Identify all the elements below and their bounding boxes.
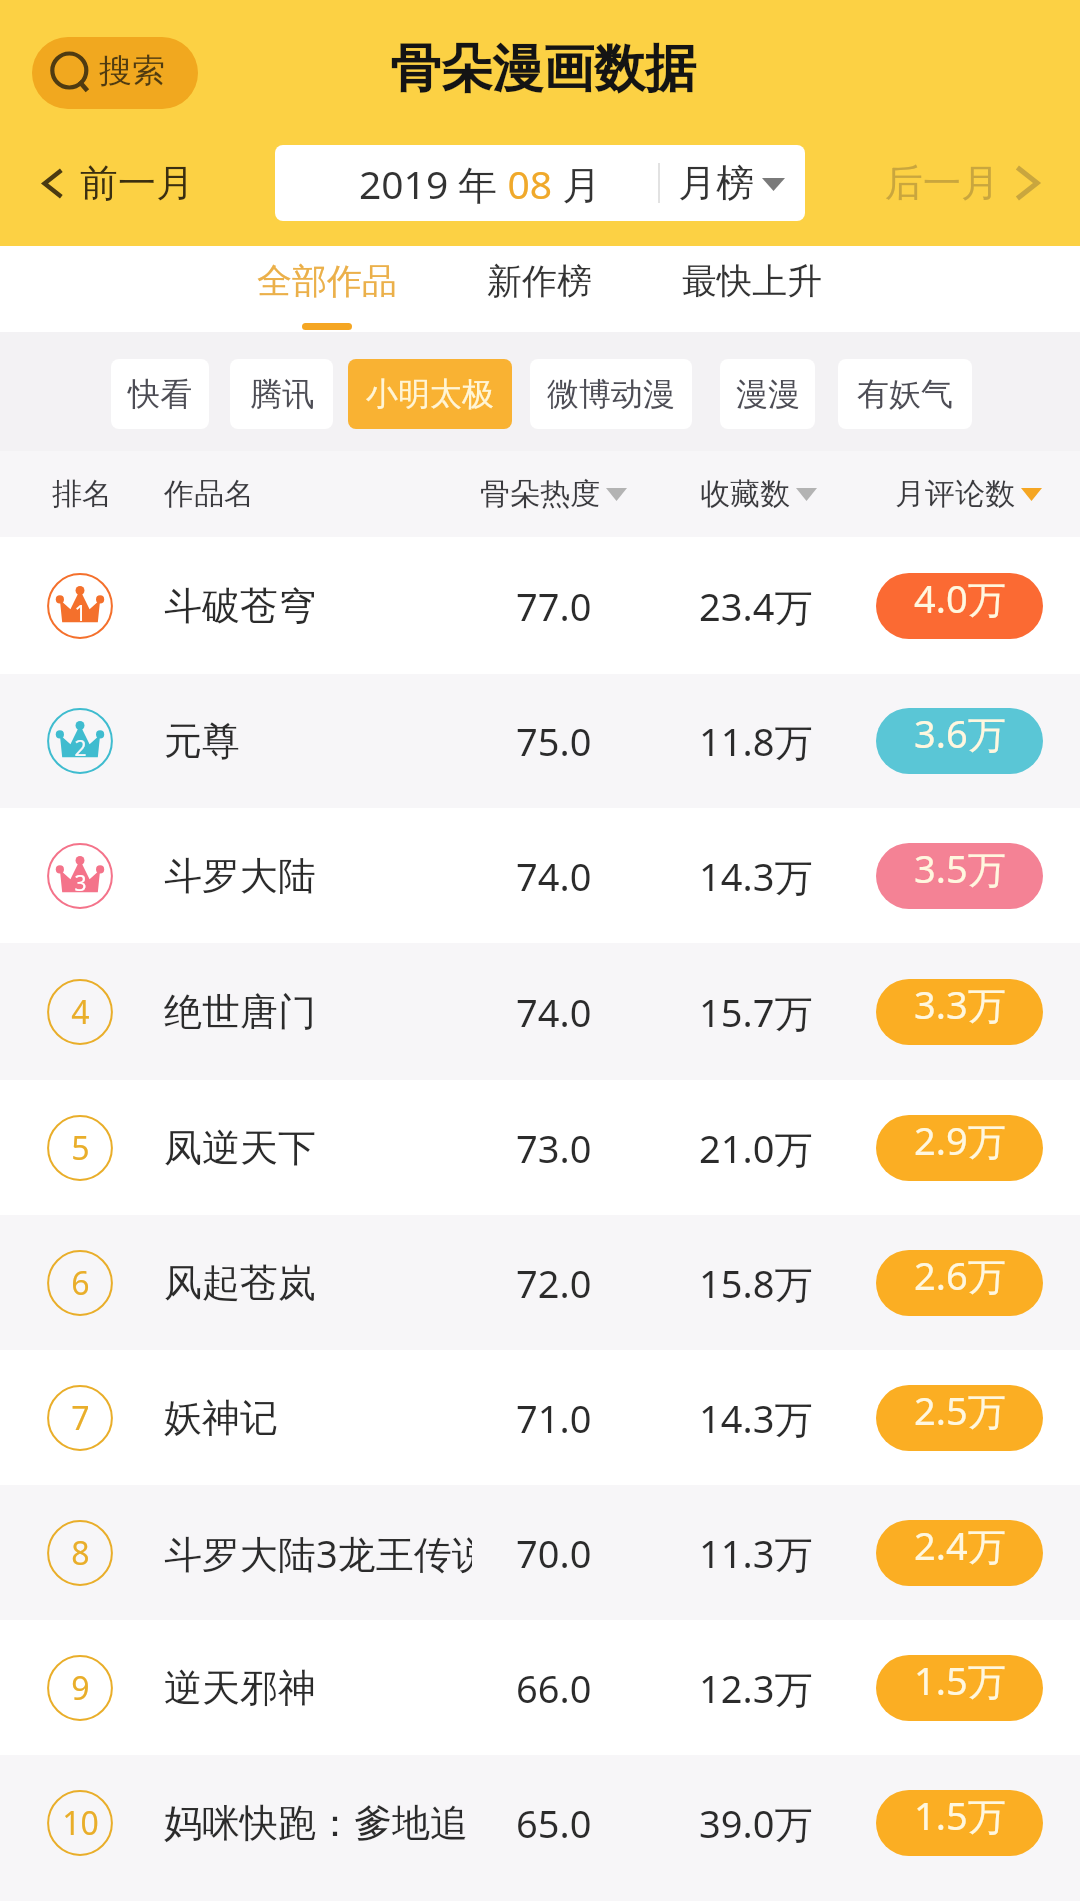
staticText: 3.5万 bbox=[914, 843, 1006, 894]
staticText: 腾讯 bbox=[250, 374, 314, 414]
staticText: 2.4万 bbox=[914, 1520, 1006, 1571]
button[interactable]: 后一月 bbox=[870, 145, 1050, 221]
button[interactable]: 1 bbox=[0, 537, 1080, 674]
staticText: 搜索 bbox=[99, 50, 165, 92]
staticText: 漫漫 bbox=[736, 374, 800, 414]
button[interactable]: 有妖气 bbox=[838, 359, 972, 429]
button[interactable]: 5 bbox=[0, 1080, 1080, 1215]
staticText: 1.5万 bbox=[914, 1655, 1006, 1706]
staticText: 月榜 bbox=[678, 159, 754, 207]
staticText: 骨朵热度 bbox=[480, 475, 600, 513]
button[interactable]: 8 bbox=[0, 1485, 1080, 1620]
button[interactable]: 腾讯 bbox=[230, 359, 333, 429]
button[interactable]: 6 bbox=[0, 1215, 1080, 1350]
staticText: 2.5万 bbox=[914, 1385, 1006, 1436]
staticText: 15.8万 bbox=[699, 1257, 813, 1309]
staticText: 77.0 bbox=[516, 580, 592, 632]
staticText: 1 bbox=[74, 599, 87, 628]
button[interactable]: 微博动漫 bbox=[530, 359, 692, 429]
staticText: 2.6万 bbox=[914, 1250, 1006, 1301]
button[interactable]: 月评论数 bbox=[895, 475, 1042, 513]
staticText: 2 bbox=[74, 734, 87, 763]
staticText: 骨朵漫画数据 bbox=[390, 37, 696, 101]
staticText: 4.0万 bbox=[914, 573, 1006, 624]
staticText: 后一月 bbox=[885, 159, 999, 207]
staticText: 11.3万 bbox=[699, 1527, 813, 1579]
button[interactable]: 2019 年 08 月 月榜 bbox=[275, 145, 805, 221]
staticText: 74.0 bbox=[516, 986, 592, 1038]
button[interactable]: 全部作品 bbox=[237, 246, 417, 330]
staticText: 21.0万 bbox=[699, 1122, 813, 1174]
staticText: 9 bbox=[71, 1666, 90, 1710]
staticText: 1.5万 bbox=[914, 1790, 1006, 1841]
staticText: 71.0 bbox=[516, 1392, 592, 1444]
staticText: 微博动漫 bbox=[547, 374, 675, 414]
staticText: 凤逆天下 bbox=[164, 1124, 316, 1172]
staticText: 斗罗大陆3龙王传说 bbox=[164, 1527, 472, 1579]
staticText: 3.6万 bbox=[914, 708, 1006, 759]
staticText: 斗破苍穹 bbox=[164, 582, 316, 630]
staticText: 73.0 bbox=[516, 1122, 592, 1174]
staticText: 8 bbox=[71, 1531, 90, 1575]
staticText: 12.3万 bbox=[699, 1662, 813, 1714]
staticText: 10 bbox=[62, 1801, 99, 1845]
staticText: 逆天邪神 bbox=[164, 1664, 316, 1712]
button[interactable]: 2 bbox=[0, 674, 1080, 808]
button[interactable]: 9 bbox=[0, 1620, 1080, 1755]
staticText: 斗罗大陆 bbox=[164, 852, 316, 900]
staticText: 最快上升 bbox=[682, 259, 822, 303]
staticText: 风起苍岚 bbox=[164, 1259, 316, 1307]
button[interactable]: 漫漫 bbox=[720, 359, 815, 429]
button[interactable]: 快看 bbox=[111, 359, 209, 429]
staticText: 65.0 bbox=[516, 1797, 592, 1849]
staticText: 作品名 bbox=[164, 475, 254, 513]
staticText: 绝世唐门 bbox=[164, 988, 316, 1036]
staticText: 74.0 bbox=[516, 850, 592, 902]
staticText: 39.0万 bbox=[699, 1797, 813, 1849]
staticText: 4 bbox=[71, 990, 90, 1034]
button[interactable]: 收藏数 bbox=[700, 475, 817, 513]
staticText: 有妖气 bbox=[857, 374, 953, 414]
staticText: 3.3万 bbox=[914, 979, 1006, 1030]
staticText: 11.8万 bbox=[699, 715, 813, 767]
staticText: 快看 bbox=[128, 374, 192, 414]
button[interactable]: 7 bbox=[0, 1350, 1080, 1485]
button[interactable]: 搜索 bbox=[32, 37, 198, 109]
staticText: 5 bbox=[71, 1126, 90, 1170]
staticText: 妖神记 bbox=[164, 1394, 278, 1442]
staticText: 66.0 bbox=[516, 1662, 592, 1714]
button[interactable]: 3 bbox=[0, 808, 1080, 943]
staticText: 3 bbox=[74, 869, 87, 898]
staticText: 72.0 bbox=[516, 1257, 592, 1309]
staticText: 6 bbox=[71, 1261, 90, 1305]
staticText: 70.0 bbox=[516, 1527, 592, 1579]
button[interactable]: 最快上升 bbox=[662, 246, 842, 323]
staticText: 前一月 bbox=[80, 159, 194, 207]
staticText: 小明太极 bbox=[366, 374, 494, 414]
staticText: 75.0 bbox=[516, 715, 592, 767]
staticText: 2.9万 bbox=[914, 1115, 1006, 1166]
button[interactable]: 前一月 bbox=[30, 145, 210, 221]
staticText: 14.3万 bbox=[699, 1392, 813, 1444]
button[interactable]: 4 bbox=[0, 943, 1080, 1080]
staticText: 妈咪快跑：爹地追 bbox=[164, 1799, 468, 1847]
button[interactable]: 小明太极 bbox=[348, 359, 512, 429]
staticText: 全部作品 bbox=[257, 259, 397, 303]
button[interactable]: 骨朵热度 bbox=[480, 475, 627, 513]
staticText: 2019 年 08 月 bbox=[359, 157, 602, 210]
staticText: 14.3万 bbox=[699, 850, 813, 902]
staticText: 15.7万 bbox=[699, 986, 813, 1038]
staticText: 7 bbox=[71, 1396, 90, 1440]
staticText: 23.4万 bbox=[699, 580, 813, 632]
staticText: 月评论数 bbox=[895, 475, 1015, 513]
staticText: 新作榜 bbox=[487, 259, 592, 303]
button[interactable]: 新作榜 bbox=[449, 246, 629, 323]
staticText: 元尊 bbox=[164, 717, 240, 765]
button[interactable]: 10 bbox=[0, 1755, 1080, 1901]
staticText: 排名 bbox=[52, 475, 112, 513]
staticText: 收藏数 bbox=[700, 475, 790, 513]
